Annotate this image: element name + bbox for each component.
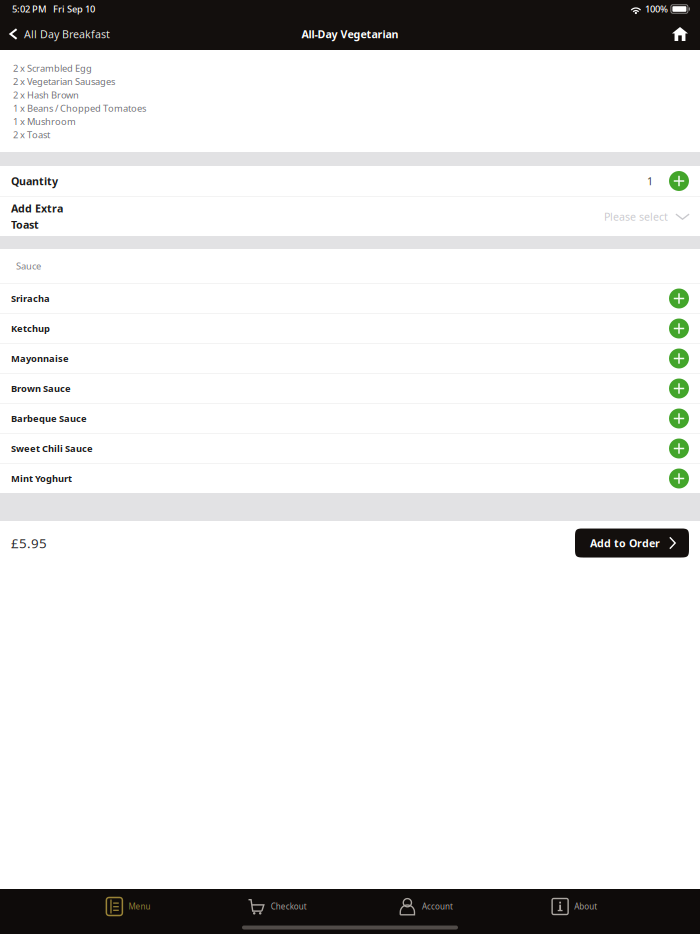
- staticText: 2 x Scrambled Egg: [13, 62, 92, 74]
- button[interactable]: Add to Order: [575, 528, 689, 557]
- staticText: 5:02 PM: [12, 3, 47, 15]
- staticText: 1 x Mushroom: [13, 115, 76, 128]
- staticText: Mint Yoghurt: [11, 472, 72, 485]
- button[interactable]: Mayonnaise: [0, 344, 700, 373]
- button[interactable]: Sriracha: [0, 284, 700, 313]
- staticText: Mayonnaise: [11, 352, 69, 365]
- staticText: Checkout: [271, 901, 307, 912]
- staticText: Quantity: [11, 174, 58, 188]
- staticText: Sweet Chili Sauce: [11, 442, 93, 455]
- button[interactable]: Home: [661, 18, 700, 50]
- staticText: All-Day Vegetarian: [301, 27, 398, 41]
- button[interactable]: Brown Sauce: [0, 374, 700, 403]
- button[interactable]: About: [500, 889, 649, 924]
- button[interactable]: Checkout: [203, 889, 352, 924]
- staticText: £5.95: [11, 534, 47, 552]
- button[interactable]: Barbeque Sauce: [0, 404, 700, 433]
- staticText: Please select: [604, 209, 668, 224]
- staticText: 2 x Vegetarian Sausages: [13, 75, 115, 88]
- button[interactable]: Sweet Chili Sauce: [0, 434, 700, 463]
- staticText: Fri Sep 10: [53, 3, 95, 15]
- staticText: Toast: [11, 217, 39, 232]
- staticText: 2 x Toast: [13, 128, 50, 141]
- staticText: Add to Order: [590, 536, 660, 550]
- button[interactable]: All Day Breakfast: [0, 18, 119, 50]
- button[interactable]: Ketchup: [0, 314, 700, 343]
- staticText: Add Extra: [11, 201, 63, 215]
- staticText: Sriracha: [11, 292, 50, 305]
- staticText: All Day Breakfast: [24, 27, 110, 41]
- staticText: Sauce: [16, 260, 41, 272]
- staticText: Menu: [128, 901, 150, 912]
- button[interactable]: Account: [351, 889, 500, 924]
- staticText: 1 x Beans / Chopped Tomatoes: [13, 102, 146, 114]
- button[interactable]: Quantity: [0, 166, 700, 196]
- staticText: Brown Sauce: [11, 382, 71, 395]
- staticText: 1: [647, 174, 653, 188]
- staticText: 2 x Hash Brown: [13, 89, 79, 101]
- staticText: Account: [422, 901, 453, 912]
- button[interactable]: Add Extra: [0, 197, 700, 236]
- button[interactable]: Menu: [54, 889, 203, 924]
- button[interactable]: Mint Yoghurt: [0, 464, 700, 493]
- staticText: 100%: [645, 3, 668, 15]
- staticText: Ketchup: [11, 322, 50, 335]
- staticText: About: [574, 901, 597, 912]
- staticText: Barbeque Sauce: [11, 412, 87, 425]
